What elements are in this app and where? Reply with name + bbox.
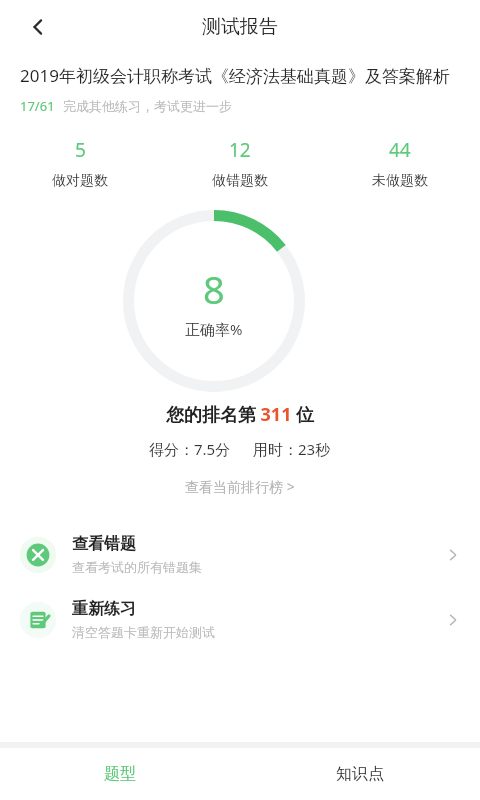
staticText: 清空答题卡重新开始测试 bbox=[72, 624, 215, 640]
button[interactable]: 44 bbox=[320, 137, 480, 190]
staticText: 您的排名第 311 位 bbox=[0, 402, 480, 427]
staticText: 做对题数 bbox=[52, 172, 108, 190]
button[interactable]: 12 bbox=[160, 137, 320, 190]
staticText: 44 bbox=[389, 137, 411, 163]
staticText: 8 bbox=[203, 263, 225, 315]
staticText: 重新练习 bbox=[72, 599, 136, 619]
staticText: 题型 bbox=[104, 764, 136, 784]
staticText: 查看当前排行榜 > bbox=[185, 477, 295, 496]
staticText: 12 bbox=[229, 137, 251, 163]
staticText: 用时：23秒 bbox=[253, 439, 331, 459]
button[interactable]: 查看当前排行榜 > bbox=[0, 473, 480, 500]
button[interactable]: 5 bbox=[0, 137, 160, 190]
staticText: 未做题数 bbox=[372, 172, 428, 190]
button[interactable]: 重新练习 bbox=[0, 587, 480, 652]
staticText: 知识点 bbox=[336, 764, 384, 784]
staticText: 做错题数 bbox=[212, 172, 268, 190]
staticText: 17/61 bbox=[20, 97, 55, 115]
staticText: 完成其他练习，考试更进一步 bbox=[63, 98, 232, 114]
staticText: 5 bbox=[75, 137, 86, 163]
staticText: 得分：7.5分 bbox=[149, 439, 231, 459]
button[interactable]: 查看错题 bbox=[0, 522, 480, 587]
button[interactable]: Back bbox=[12, 1, 64, 53]
staticText: 测试报告 bbox=[202, 15, 278, 39]
staticText: 2019年初级会计职称考试《经济法基础真题》及答案解析 bbox=[20, 64, 454, 87]
button[interactable]: 题型 bbox=[0, 748, 240, 800]
button[interactable]: 知识点 bbox=[240, 748, 480, 800]
staticText: 查看错题 bbox=[72, 534, 136, 554]
staticText: 查看考试的所有错题集 bbox=[72, 559, 202, 575]
staticText: 正确率% bbox=[185, 319, 243, 339]
